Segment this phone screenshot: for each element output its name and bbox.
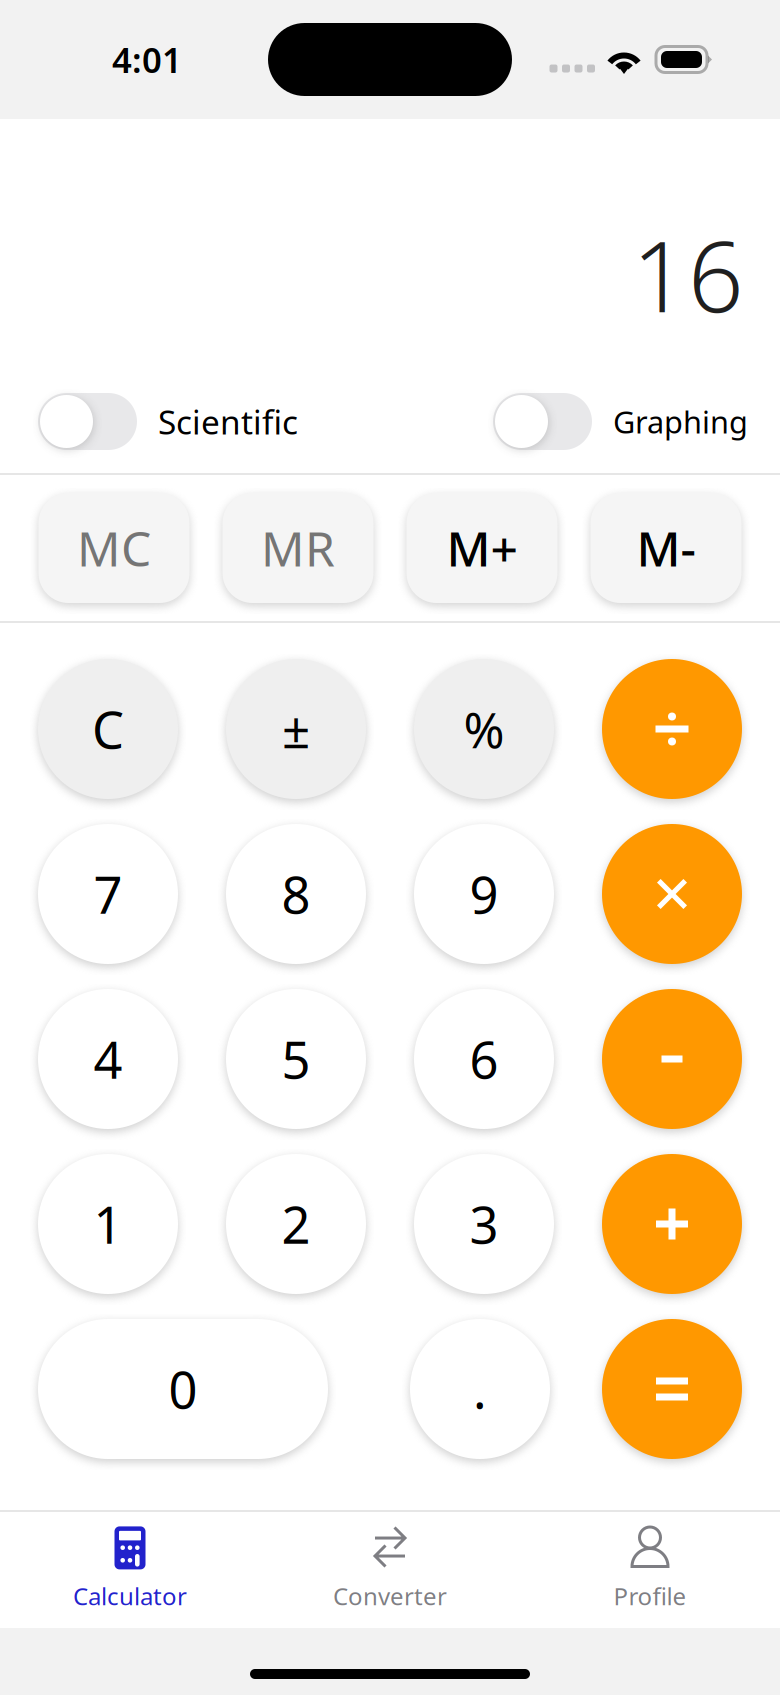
button[interactable]: Toggle (493, 393, 592, 450)
button[interactable]: 0 (38, 1319, 328, 1459)
button[interactable]: 1 (38, 1154, 178, 1294)
button[interactable]: . (410, 1319, 550, 1459)
staticText: 7 (93, 860, 122, 928)
button[interactable]: 5 (226, 989, 366, 1129)
staticText: ± (282, 696, 310, 762)
button[interactable]: 7 (38, 824, 178, 964)
staticText: MR (261, 516, 335, 580)
staticText: 4:01 (112, 36, 182, 82)
button[interactable]: ± (226, 659, 366, 799)
button[interactable]: Add (602, 1154, 742, 1294)
staticText: MC (77, 516, 151, 580)
staticText: 5 (281, 1025, 310, 1093)
staticText: Calculator (73, 1580, 187, 1612)
staticText: C (92, 695, 124, 763)
button[interactable]: 8 (226, 824, 366, 964)
staticText: Scientific (158, 399, 298, 444)
staticText: Profile (613, 1580, 686, 1612)
staticText: 16 (632, 210, 744, 339)
staticText: 1 (93, 1190, 122, 1258)
button[interactable]: Multiply (602, 824, 742, 964)
staticText: 2 (281, 1190, 310, 1258)
staticText: M- (636, 516, 695, 580)
staticText: Converter (333, 1580, 447, 1612)
button[interactable]: 3 (414, 1154, 554, 1294)
button[interactable]: M- (590, 493, 741, 603)
button[interactable]: C (38, 659, 178, 799)
button[interactable]: MR (222, 493, 373, 603)
button[interactable]: Toggle (38, 393, 137, 450)
button[interactable]: % (414, 659, 554, 799)
staticText: M+ (446, 516, 517, 580)
staticText: 4 (93, 1025, 122, 1093)
staticText: 0 (168, 1355, 197, 1423)
staticText: 8 (281, 860, 310, 928)
button[interactable]: Converter (260, 1512, 520, 1628)
button[interactable]: Equals (602, 1319, 742, 1459)
staticText: 9 (469, 860, 498, 928)
button[interactable]: 9 (414, 824, 554, 964)
button[interactable]: Profile (520, 1512, 780, 1628)
button[interactable]: 4 (38, 989, 178, 1129)
staticText: Graphing (613, 401, 748, 442)
staticText: 3 (469, 1190, 498, 1258)
button[interactable]: Calculator (0, 1512, 260, 1628)
button[interactable]: Divide (602, 659, 742, 799)
staticText: 6 (469, 1025, 498, 1093)
button[interactable]: 2 (226, 1154, 366, 1294)
button[interactable]: MC (38, 493, 189, 603)
staticText: % (463, 696, 504, 762)
button[interactable]: Subtract (602, 989, 742, 1129)
staticText: . (473, 1355, 487, 1423)
button[interactable]: 6 (414, 989, 554, 1129)
button[interactable]: M+ (406, 493, 557, 603)
